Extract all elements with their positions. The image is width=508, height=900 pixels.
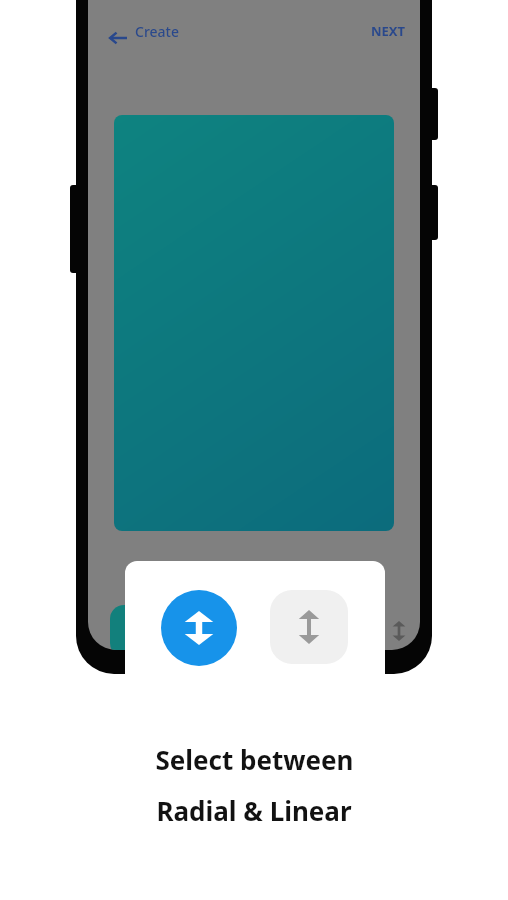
button[interactable] bbox=[114, 115, 394, 531]
button[interactable]: Back bbox=[98, 20, 138, 56]
button[interactable]: Linear gradient bbox=[373, 605, 420, 650]
staticText: Select between bbox=[155, 742, 354, 777]
button[interactable]: Linear gradient bbox=[270, 590, 348, 664]
staticText: Radial & Linear bbox=[156, 793, 352, 828]
button[interactable]: Radial gradient bbox=[161, 590, 237, 666]
staticText: NEXT bbox=[371, 22, 406, 40]
button[interactable]: Create bbox=[135, 22, 179, 41]
button[interactable]: NEXT bbox=[371, 22, 406, 40]
button[interactable] bbox=[110, 605, 168, 650]
staticText: Create bbox=[135, 22, 179, 41]
